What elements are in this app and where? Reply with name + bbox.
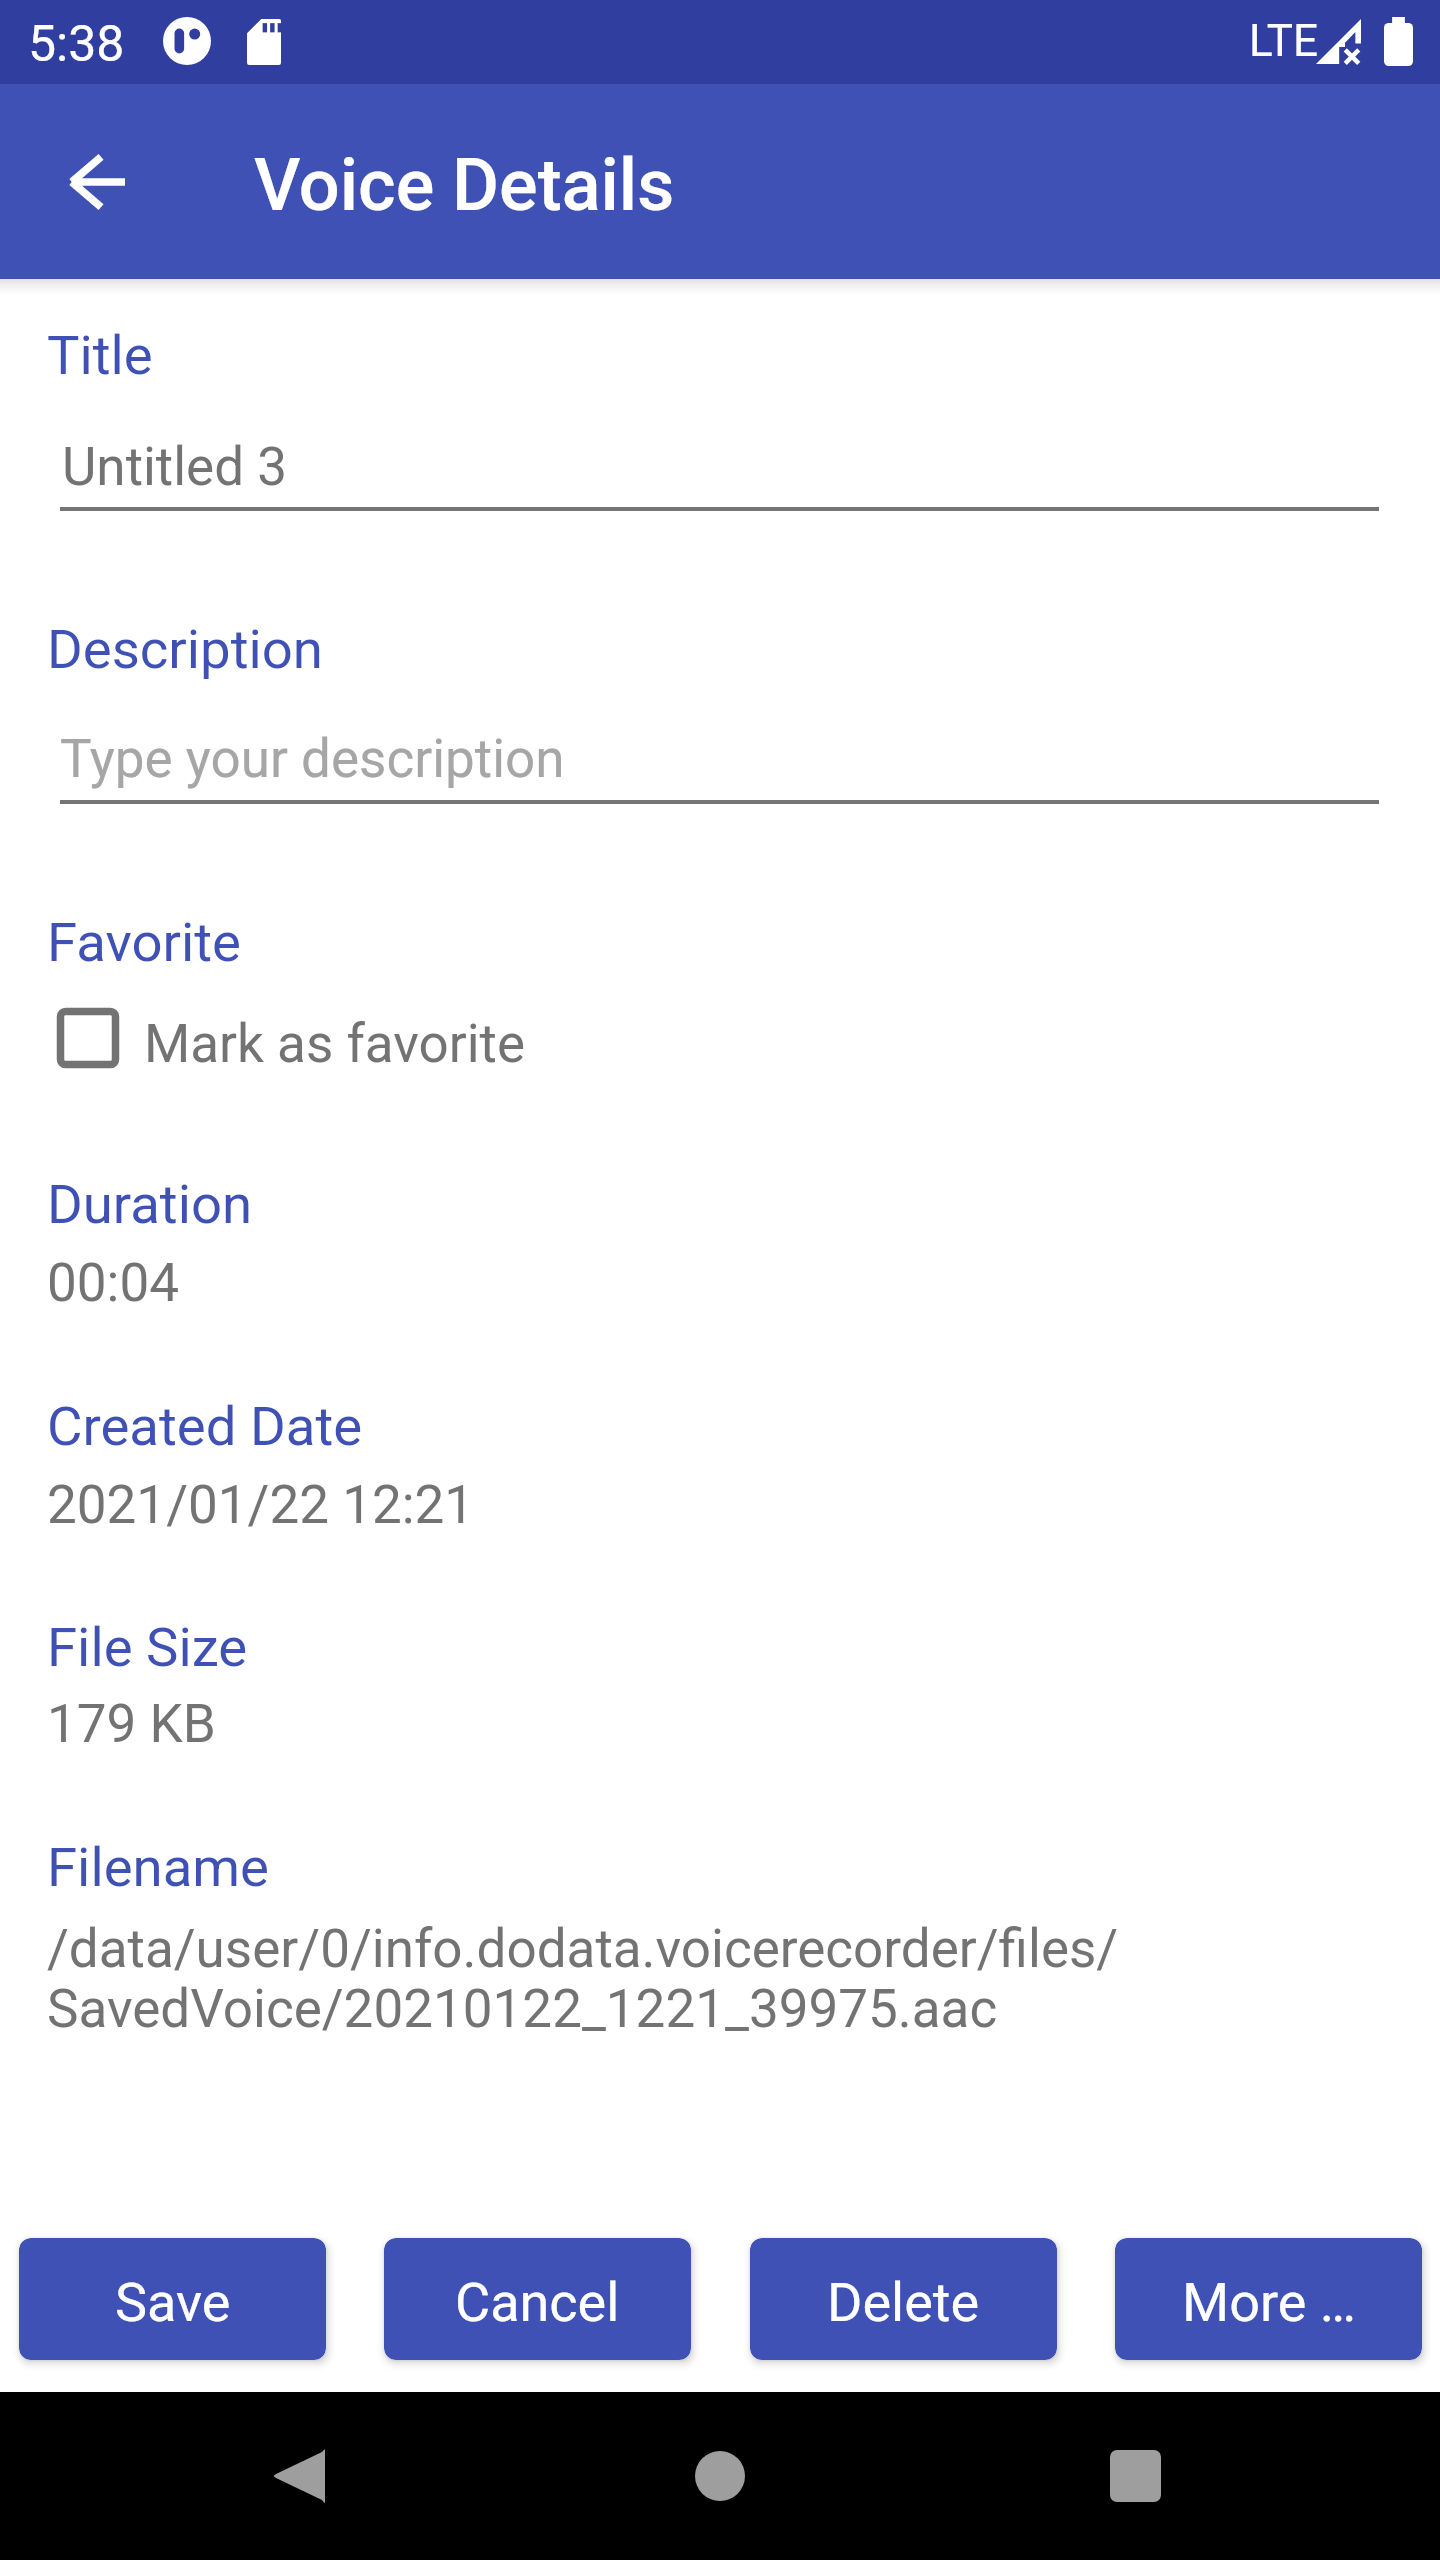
staticText: File Size	[47, 1615, 248, 1679]
staticText: Voice Details	[254, 143, 675, 227]
staticText: Description	[47, 617, 323, 681]
button[interactable]: Home	[660, 2416, 780, 2536]
staticText: Type your description	[60, 728, 565, 790]
button[interactable]: Type your description	[60, 713, 1379, 804]
button[interactable]: Mark as favorite	[47, 996, 547, 1080]
staticText: LTE	[1249, 15, 1319, 67]
staticText: Created Date	[47, 1394, 363, 1458]
button[interactable]: Delete	[750, 2238, 1057, 2360]
staticText: Untitled 3	[62, 436, 288, 498]
staticText: 2021/01/22 12:21	[47, 1474, 475, 1536]
button[interactable]: Recents	[1075, 2416, 1195, 2536]
staticText: 5:38	[28, 15, 125, 74]
staticText: Favorite	[47, 910, 241, 974]
staticText: Cancel	[455, 2271, 620, 2334]
staticText: 00:04	[47, 1252, 179, 1314]
button[interactable]: Save	[19, 2238, 326, 2360]
staticText: /data/user/0/info.dodata.voicerecorder/f…	[47, 1918, 1167, 2040]
staticText: Delete	[827, 2271, 980, 2334]
button[interactable]: Back	[239, 2416, 359, 2536]
staticText: Title	[47, 323, 153, 387]
staticText: Mark as favorite	[144, 1013, 526, 1075]
button[interactable]: Untitled 3	[60, 420, 1379, 511]
staticText: Save	[115, 2271, 231, 2334]
staticText: Duration	[47, 1172, 253, 1236]
button[interactable]: More …	[1115, 2238, 1422, 2360]
staticText: 179 KB	[47, 1693, 216, 1755]
button[interactable]: Cancel	[384, 2238, 691, 2360]
staticText: Filename	[47, 1835, 269, 1899]
staticText: More …	[1182, 2271, 1356, 2334]
button[interactable]: Back	[40, 126, 152, 238]
